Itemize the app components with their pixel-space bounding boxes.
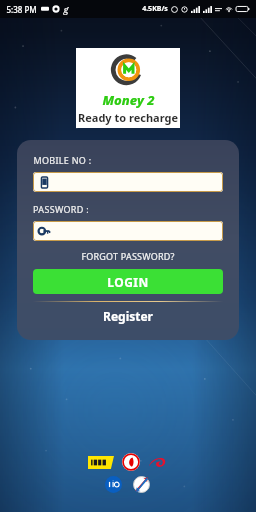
staticText: Money 2 (102, 91, 155, 109)
staticText: FORGOT PASSWORD? (81, 250, 175, 262)
staticText: PASSWORD : (33, 203, 89, 215)
button[interactable]: Recharge (132, 475, 151, 494)
button[interactable]: Airtel (148, 454, 168, 470)
button[interactable]: Jio (105, 476, 122, 493)
staticText: g (63, 3, 69, 15)
button[interactable] (33, 221, 223, 241)
button[interactable]: LOGIN (33, 269, 223, 294)
staticText: Register (103, 308, 153, 324)
staticText: LOGIN (107, 274, 149, 290)
button[interactable]: FORGOT PASSWORD? (33, 250, 223, 262)
button[interactable]: Idea (88, 456, 114, 469)
button[interactable]: Vodafone (122, 453, 140, 471)
staticText: 5:38 PM (6, 4, 37, 15)
button[interactable] (33, 172, 223, 192)
staticText: MOBILE NO : (33, 154, 92, 166)
staticText: Ready to recharge (78, 110, 178, 125)
button[interactable]: Register (33, 308, 223, 324)
staticText: 4.5KB/s (142, 4, 168, 14)
